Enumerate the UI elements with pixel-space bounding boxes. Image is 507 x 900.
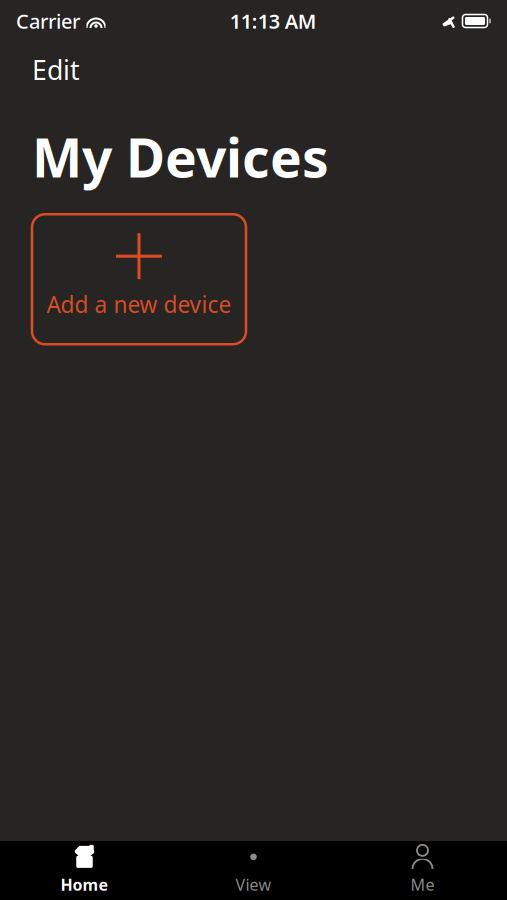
button[interactable]: Me (338, 836, 507, 900)
staticText: Home (60, 874, 108, 895)
staticText: Edit (32, 52, 80, 87)
button[interactable]: Add a new device (32, 214, 246, 344)
button[interactable]: View (169, 836, 338, 900)
staticText: Carrier (16, 8, 80, 34)
button[interactable]: Edit (28, 46, 84, 93)
staticText: Me (410, 874, 434, 895)
button[interactable]: Home (0, 836, 169, 900)
staticText: My Devices (32, 121, 329, 192)
staticText: Add a new device (46, 289, 231, 319)
staticText: 11:13 AM (230, 8, 317, 34)
staticText: View (235, 874, 271, 895)
